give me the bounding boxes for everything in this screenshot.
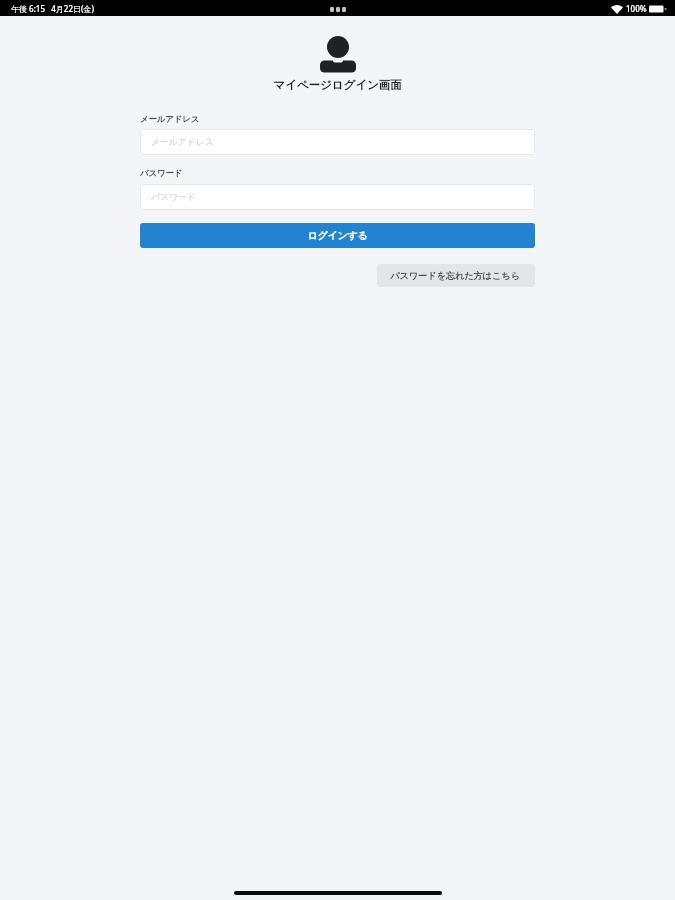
staticText: メールアドレス: [140, 114, 200, 124]
button[interactable]: メールアドレス: [140, 129, 535, 155]
staticText: ログインする: [307, 230, 368, 242]
staticText: マイページログイン画面: [273, 78, 402, 92]
other: Account: [320, 36, 356, 73]
staticText: 午後 6:15 4月22日(金): [11, 3, 94, 14]
button[interactable]: パスワードを忘れた方はこちら: [377, 264, 535, 287]
staticText: メールアドレス: [151, 137, 214, 148]
staticText: パスワード: [151, 192, 196, 203]
button[interactable]: ログインする: [140, 223, 535, 248]
button[interactable]: パスワード: [140, 184, 535, 210]
staticText: パスワード: [140, 168, 183, 178]
staticText: パスワードを忘れた方はこちら: [390, 270, 520, 281]
staticText: 100%: [626, 3, 647, 14]
